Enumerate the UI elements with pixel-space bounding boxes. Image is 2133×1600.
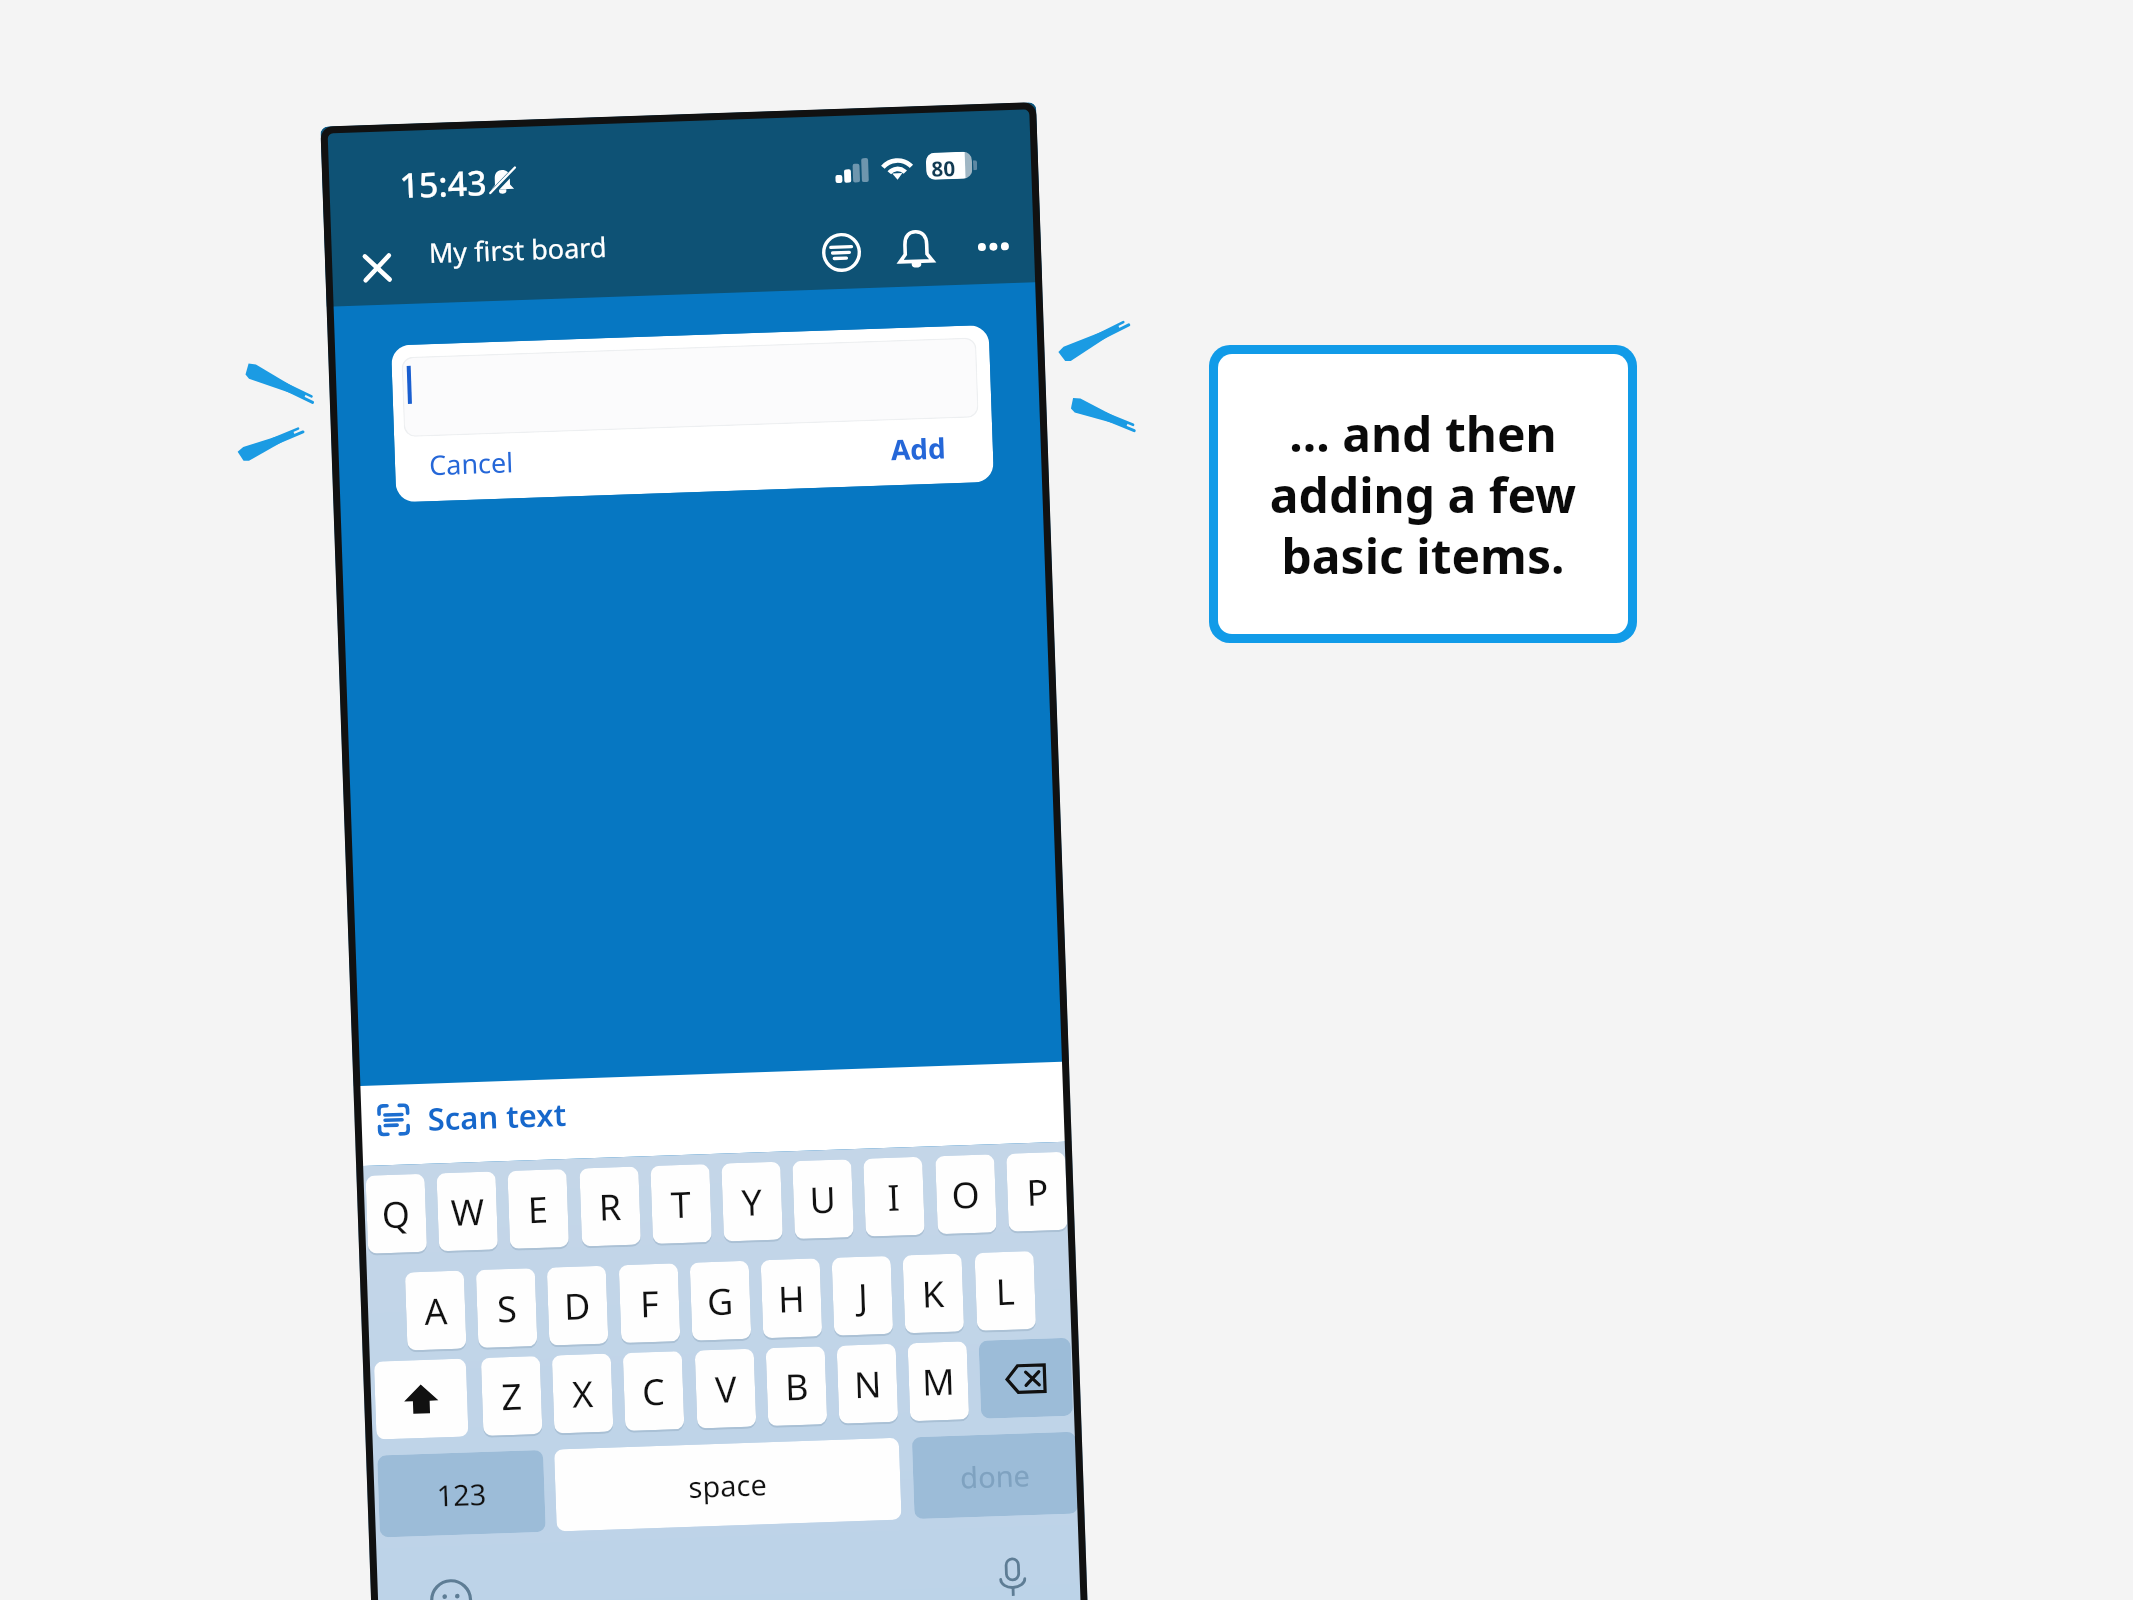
button[interactable]: W [436, 1171, 498, 1251]
staticText: H [777, 1274, 806, 1324]
button[interactable]: Z [481, 1356, 542, 1436]
button[interactable]: N [837, 1344, 898, 1424]
staticText: W [450, 1187, 486, 1237]
staticText: S [496, 1284, 518, 1333]
button[interactable]: I [863, 1157, 925, 1237]
staticText: Y [741, 1177, 763, 1227]
staticText: C [641, 1367, 666, 1416]
button[interactable]: More options [965, 219, 1021, 275]
staticText: 80 [931, 154, 956, 180]
button[interactable]: Y [721, 1162, 783, 1242]
button[interactable]: E [507, 1169, 569, 1249]
staticText: D [563, 1281, 592, 1331]
staticText: P [1026, 1167, 1049, 1217]
button[interactable]: Q [365, 1174, 427, 1254]
button[interactable]: U [792, 1159, 854, 1239]
button[interactable]: M [908, 1341, 969, 1421]
button[interactable]: Emoji [425, 1574, 477, 1600]
staticText: Add [890, 428, 946, 468]
button[interactable]: K [902, 1253, 964, 1333]
button[interactable]: T [650, 1164, 712, 1244]
staticText: I [887, 1172, 901, 1222]
button[interactable]: Scan text [376, 1085, 567, 1149]
button[interactable]: A [405, 1270, 466, 1350]
staticText: K [921, 1269, 946, 1319]
staticText: Q [381, 1189, 412, 1239]
staticText: T [670, 1180, 692, 1229]
button[interactable]: R [579, 1166, 641, 1246]
staticText: N [853, 1359, 883, 1409]
staticText: O [951, 1170, 981, 1220]
staticText: B [784, 1362, 810, 1411]
button[interactable]: F [619, 1263, 680, 1343]
staticText: X [571, 1369, 595, 1419]
staticText: Z [500, 1372, 523, 1421]
button[interactable]: D [547, 1266, 608, 1346]
button[interactable]: V [695, 1349, 756, 1429]
staticText: M [921, 1357, 956, 1407]
staticText: My first board [428, 228, 607, 271]
button[interactable]: Voice input [987, 1552, 1038, 1600]
button[interactable]: Close [351, 242, 403, 294]
staticText: F [639, 1279, 660, 1328]
staticText: E [527, 1185, 550, 1234]
staticText: 15:43 [399, 159, 488, 208]
staticText: V [714, 1364, 738, 1414]
button[interactable]: ... and then adding a few basic items. [1218, 354, 1628, 634]
staticText: G [706, 1276, 735, 1326]
staticText: done [959, 1455, 1031, 1497]
button[interactable]: H [761, 1258, 822, 1338]
staticText: Scan text [427, 1093, 567, 1140]
staticText: L [995, 1267, 1016, 1316]
button[interactable]: P [1006, 1152, 1068, 1232]
staticText: 123 [436, 1474, 487, 1515]
staticText: R [598, 1182, 623, 1232]
button[interactable]: S [476, 1268, 537, 1348]
staticText: space [688, 1464, 768, 1506]
staticText: ... and then adding a few basic items. [1258, 401, 1588, 588]
button[interactable]: 123 [377, 1450, 546, 1538]
button[interactable]: Cancel [422, 440, 521, 486]
button[interactable] [401, 337, 979, 437]
button[interactable]: J [832, 1256, 893, 1336]
button[interactable]: C [623, 1351, 684, 1431]
button[interactable]: done [912, 1432, 1078, 1519]
button[interactable]: Shift [374, 1358, 468, 1440]
staticText: U [809, 1175, 837, 1225]
button[interactable]: B [766, 1346, 827, 1426]
button[interactable]: L [974, 1251, 1036, 1331]
staticText: A [423, 1286, 449, 1336]
button[interactable]: Backspace [978, 1338, 1073, 1419]
button[interactable]: Add [884, 425, 953, 472]
button[interactable]: X [552, 1353, 613, 1433]
button[interactable]: Activity [813, 224, 869, 280]
button[interactable]: space [554, 1438, 902, 1531]
button[interactable]: O [935, 1154, 997, 1234]
button[interactable]: Notifications [888, 221, 944, 277]
staticText: J [857, 1272, 869, 1321]
button[interactable]: G [690, 1261, 751, 1341]
staticText: Cancel [428, 443, 515, 483]
